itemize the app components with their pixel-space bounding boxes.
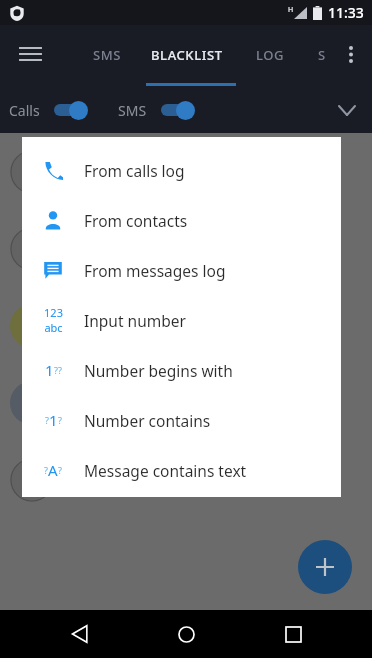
staticText: Input number <box>84 310 186 331</box>
staticText: S <box>318 46 326 64</box>
button[interactable]: ? <box>22 395 341 445</box>
button[interactable]: BLACKLIST <box>143 31 223 77</box>
staticText: 1 <box>45 360 54 380</box>
staticText: From contacts <box>84 210 188 231</box>
staticText: A <box>48 460 58 480</box>
button[interactable]: From calls log <box>22 145 341 195</box>
staticText: H <box>288 5 294 15</box>
button[interactable] <box>0 364 372 441</box>
button[interactable]: 123 <box>22 295 341 345</box>
button[interactable] <box>0 210 372 287</box>
button[interactable]: Recent apps <box>266 610 320 658</box>
button[interactable]: Back <box>53 610 107 658</box>
button[interactable]: From messages log <box>22 245 341 295</box>
staticText: SMS <box>118 101 147 120</box>
staticText: ? <box>58 414 62 426</box>
button[interactable] <box>0 441 372 518</box>
staticText: From calls log <box>84 160 185 181</box>
button[interactable]: ? <box>22 445 341 495</box>
button[interactable]: 1 <box>22 345 341 395</box>
button[interactable] <box>0 287 372 364</box>
staticText: abc <box>44 320 63 335</box>
staticText: LOG <box>256 46 285 64</box>
staticText: 123 <box>44 305 63 320</box>
staticText: ? <box>45 414 49 426</box>
staticText: Number begins with <box>84 360 233 381</box>
staticText: ? <box>58 464 62 476</box>
button[interactable]: Open navigation drawer <box>10 34 50 74</box>
button[interactable]: S <box>310 31 326 77</box>
staticText: SMS <box>93 46 122 64</box>
staticText: 1 <box>49 410 58 430</box>
button[interactable]: SMS <box>85 31 122 77</box>
staticText: ?? <box>54 364 62 376</box>
staticText: ? <box>44 464 48 476</box>
button[interactable]: Add <box>298 540 352 594</box>
staticText: Number contains <box>84 410 211 431</box>
button[interactable]: Home <box>159 610 213 658</box>
staticText: Calls <box>9 101 40 120</box>
staticText: 11:33 <box>328 3 364 22</box>
staticText: Message contains text <box>84 460 247 481</box>
button[interactable]: More options <box>336 33 366 75</box>
button[interactable]: From contacts <box>22 195 341 245</box>
button[interactable]: Calls <box>9 100 90 120</box>
staticText: BLACKLIST <box>151 46 223 64</box>
staticText: From messages log <box>84 260 226 281</box>
button[interactable]: SMS <box>118 100 197 120</box>
button[interactable]: LOG <box>248 31 285 77</box>
button[interactable]: Expand <box>330 93 364 127</box>
button[interactable] <box>0 133 372 210</box>
